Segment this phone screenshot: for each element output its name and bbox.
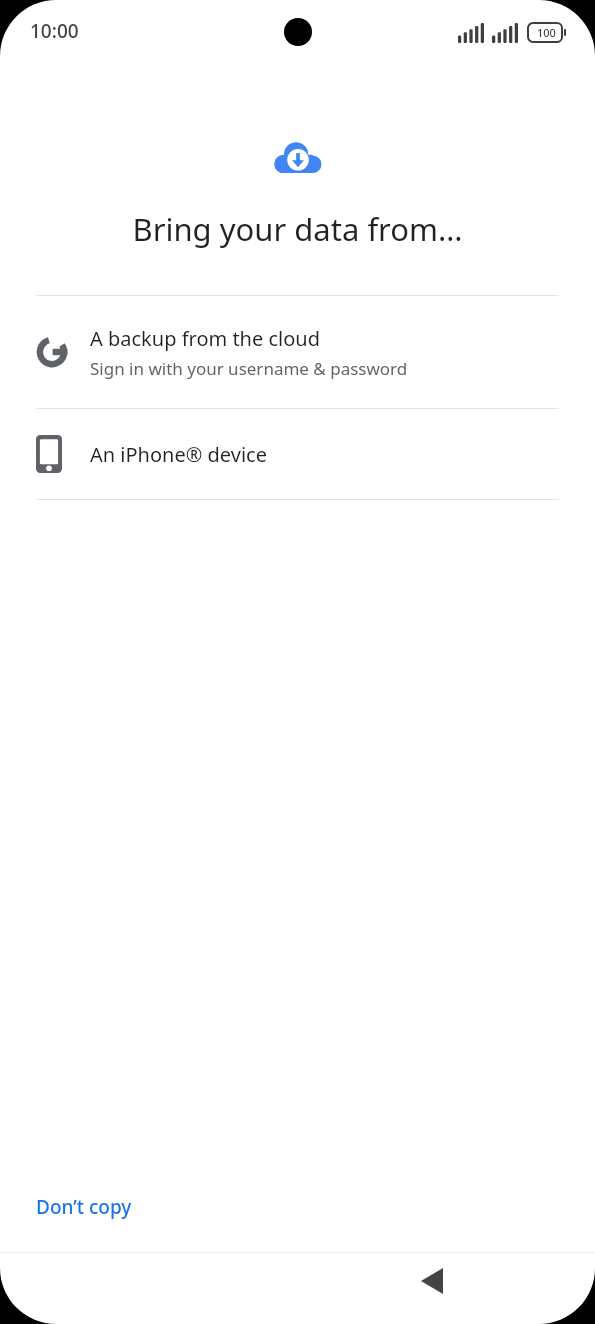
staticText: Bring your data from…	[0, 208, 595, 250]
button[interactable]: Google account	[0, 296, 595, 408]
button[interactable]: Don’t copy	[20, 1184, 148, 1230]
staticText: An iPhone® device	[90, 441, 267, 468]
staticText: 100	[537, 25, 556, 40]
other: iPhone device	[36, 435, 62, 473]
button[interactable]: Back	[404, 1253, 460, 1309]
other: Google account	[36, 336, 68, 368]
button[interactable]: iPhone device	[0, 409, 595, 499]
staticText: 10:00	[30, 18, 79, 44]
staticText: A backup from the cloud	[90, 325, 320, 352]
staticText: Don’t copy	[36, 1194, 132, 1220]
staticText: Sign in with your username & password	[90, 357, 408, 380]
